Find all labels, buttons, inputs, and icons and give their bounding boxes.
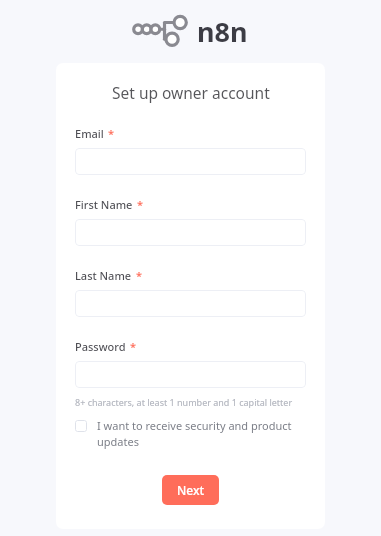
button[interactable]: Last Name <box>75 290 306 317</box>
staticText: Next <box>177 482 205 498</box>
staticText: Set up owner account <box>112 82 270 103</box>
button[interactable]: First Name <box>75 219 306 246</box>
button[interactable]: Next <box>162 475 219 505</box>
staticText: * <box>136 268 143 283</box>
button[interactable]: Password <box>75 361 306 388</box>
staticText: Email <box>75 126 104 141</box>
staticText: First Name <box>75 197 133 212</box>
staticText: n8n <box>197 13 248 50</box>
button[interactable]: I want to receive security and product u… <box>75 418 306 449</box>
staticText: Last Name <box>75 268 132 283</box>
staticText: * <box>108 126 115 141</box>
other: n8n logo <box>134 16 188 46</box>
staticText: 8+ characters, at least 1 number and 1 c… <box>75 396 293 408</box>
staticText: * <box>130 339 137 354</box>
staticText: Password <box>75 339 126 354</box>
staticText: * <box>137 197 144 212</box>
button[interactable]: Email <box>75 148 306 175</box>
staticText: I want to receive security and product u… <box>97 418 306 449</box>
